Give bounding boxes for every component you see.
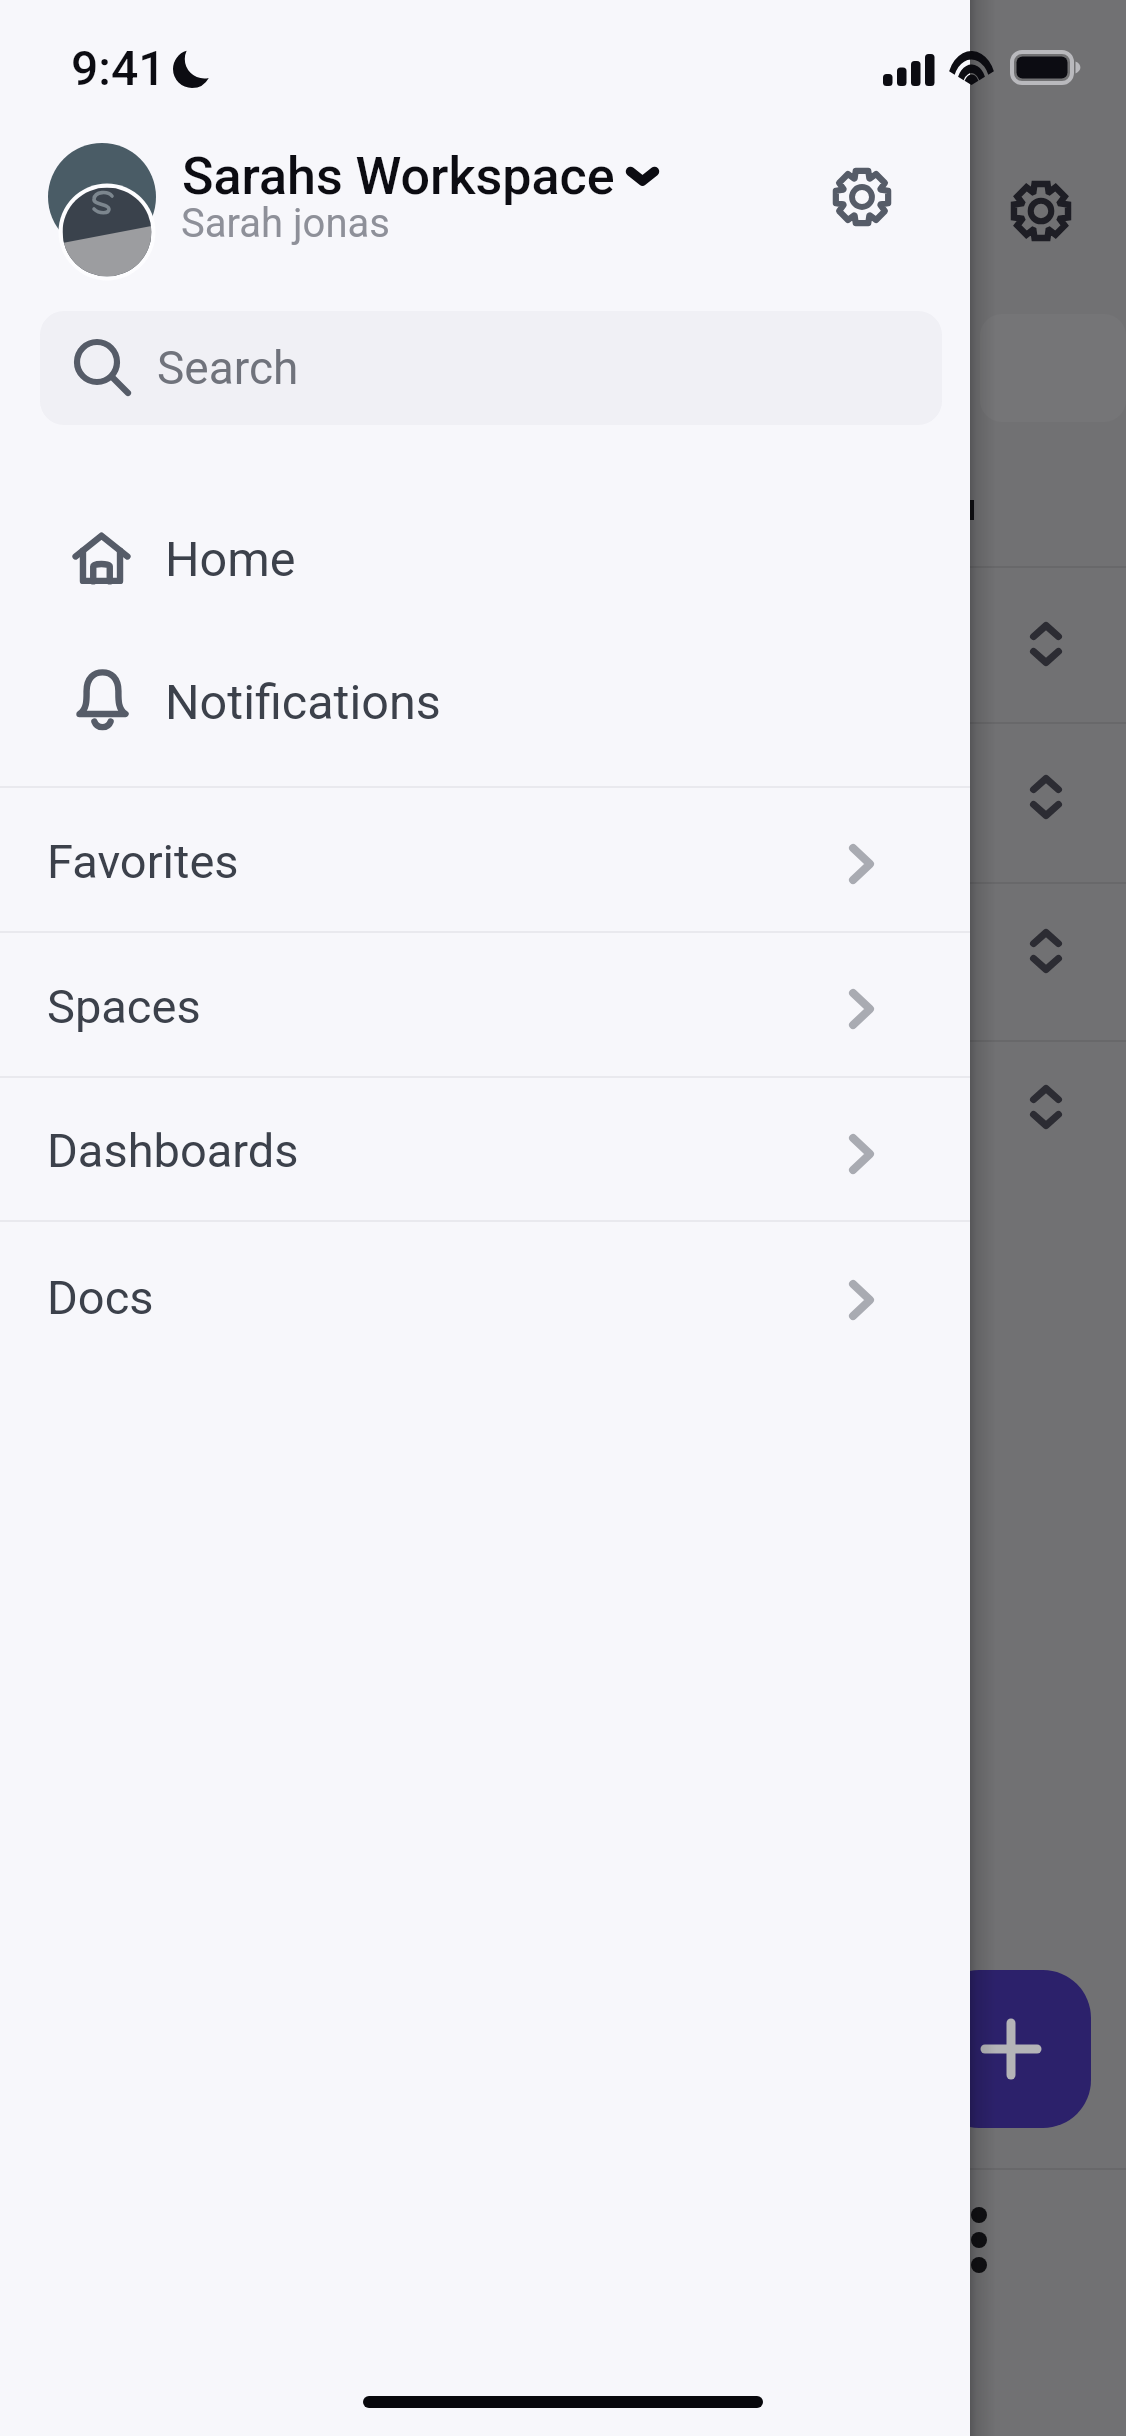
button[interactable] [0, 488, 970, 628]
button[interactable]: Add [931, 1970, 1091, 2128]
staticText: Search [157, 341, 299, 395]
button[interactable]: Docs [0, 1222, 970, 1370]
staticText: Docs [47, 1270, 154, 1325]
button[interactable]: Settings [990, 160, 1090, 260]
staticText: Favorites [47, 834, 239, 889]
button[interactable]: Search [40, 311, 942, 425]
staticText: Sarahs Workspace [182, 146, 615, 207]
staticText: Notifications [165, 674, 441, 731]
button[interactable]: Expand [1016, 614, 1076, 674]
button[interactable]: Expand [1016, 1077, 1076, 1137]
button[interactable]: Expand [1016, 921, 1076, 981]
staticText: 9:41 [71, 40, 166, 96]
staticText: Spaces [47, 979, 201, 1034]
button[interactable] [0, 626, 970, 766]
button[interactable]: Spaces [0, 933, 970, 1077]
staticText: Home [165, 531, 296, 588]
button[interactable]: Dashboards [0, 1078, 970, 1221]
staticText: Dashboards [47, 1123, 299, 1178]
staticText: Sarah jonas [181, 200, 390, 247]
button[interactable]: Expand [1016, 767, 1076, 827]
button[interactable]: Favorites [0, 788, 970, 932]
button[interactable]: Settings [812, 147, 912, 247]
